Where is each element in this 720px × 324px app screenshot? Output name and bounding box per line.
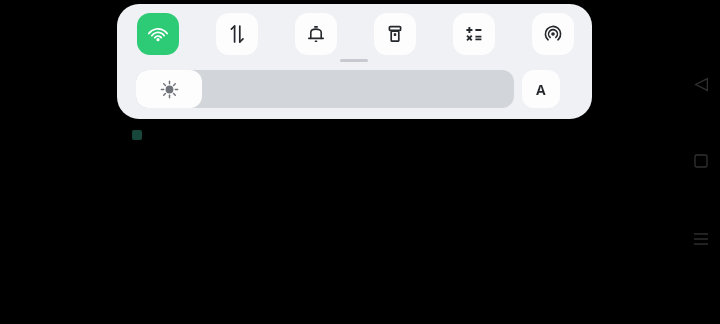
button[interactable]: Back [686, 69, 716, 99]
button[interactable]: Mobile data [216, 13, 258, 55]
button[interactable]: Brightness [136, 70, 514, 108]
button[interactable]: Wi-Fi [137, 13, 179, 55]
button[interactable]: Flashlight [374, 13, 416, 55]
button[interactable]: Calculator [453, 13, 495, 55]
staticText: A [536, 80, 546, 99]
button[interactable]: Sound [295, 13, 337, 55]
button[interactable]: Home [686, 146, 716, 176]
button[interactable]: A [522, 70, 560, 108]
button[interactable]: Recent apps [686, 224, 716, 254]
button[interactable]: Hotspot [532, 13, 574, 55]
